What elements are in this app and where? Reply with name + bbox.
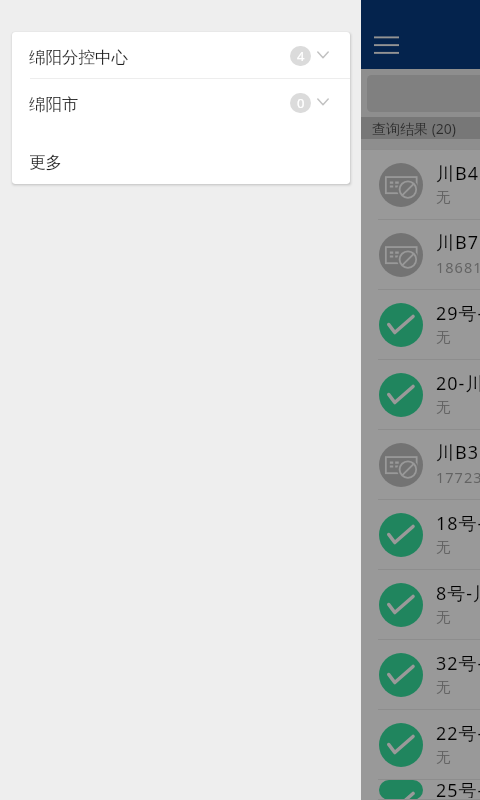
button[interactable]: 绵阳分控中心 xyxy=(12,32,350,78)
button[interactable]: 25号- xyxy=(361,780,480,800)
staticText: 川B4 xyxy=(436,161,479,186)
staticText: 查询结果 (20) xyxy=(372,119,457,138)
button[interactable]: 8号-川 xyxy=(361,570,480,640)
staticText: 无 xyxy=(436,608,452,626)
staticText: 无 xyxy=(436,398,452,416)
staticText: 4 xyxy=(297,47,305,65)
staticText: 川B7 xyxy=(436,230,479,255)
button[interactable]: 32号- xyxy=(361,640,480,710)
staticText: 绵阳市 xyxy=(29,94,79,115)
staticText: 绵阳分控中心 xyxy=(29,47,128,68)
staticText: 无 xyxy=(436,538,452,556)
staticText: 更多 xyxy=(29,152,62,173)
button[interactable]: 18号- xyxy=(361,500,480,570)
button[interactable]: 29号- xyxy=(361,290,480,360)
staticText: 22号- xyxy=(436,721,480,746)
staticText: 8号-川 xyxy=(436,581,480,606)
staticText: 18号- xyxy=(436,511,480,536)
staticText: 17723 xyxy=(436,467,480,487)
button[interactable]: 川B4 xyxy=(361,150,480,220)
button[interactable]: 绵阳市 xyxy=(12,79,350,125)
button[interactable]: 更多 xyxy=(12,138,350,184)
staticText: 无 xyxy=(436,188,452,206)
staticText: 25号- xyxy=(436,778,480,798)
button[interactable]: 川B7 xyxy=(361,220,480,290)
staticText: 29号- xyxy=(436,301,480,326)
staticText: 无 xyxy=(436,328,452,346)
staticText: 32号- xyxy=(436,651,480,676)
staticText: 无 xyxy=(436,748,452,766)
button[interactable]: 川B3 xyxy=(361,430,480,500)
button[interactable]: Open navigation drawer xyxy=(362,22,410,70)
staticText: 0 xyxy=(297,94,305,112)
staticText: 无 xyxy=(436,678,452,696)
button[interactable]: 20-川 xyxy=(361,360,480,430)
staticText: 18681 xyxy=(436,257,480,277)
staticText: 20-川 xyxy=(436,371,480,396)
staticText: 川B3 xyxy=(436,440,479,465)
button[interactable]: 22号- xyxy=(361,710,480,780)
